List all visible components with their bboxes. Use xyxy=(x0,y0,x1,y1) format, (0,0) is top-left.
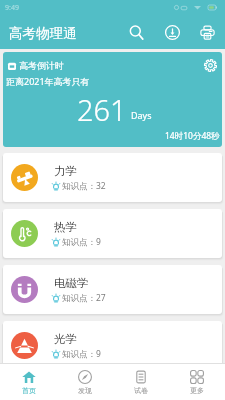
button[interactable]: 发现 xyxy=(57,364,113,400)
button[interactable]: Print xyxy=(193,18,222,47)
staticText: 力学 xyxy=(54,164,77,178)
staticText: 知识点：9 xyxy=(62,236,101,248)
staticText: 电磁学 xyxy=(54,276,89,290)
staticText: 知识点：27 xyxy=(62,292,106,304)
staticText: 发现 xyxy=(78,386,92,395)
button[interactable]: 热学 xyxy=(3,209,222,258)
button[interactable]: 光学 xyxy=(3,321,222,370)
button[interactable]: Search xyxy=(122,18,151,47)
button[interactable]: 电磁学 xyxy=(3,265,222,314)
staticText: 知识点：32 xyxy=(62,180,106,192)
button[interactable]: 首页 xyxy=(0,364,57,400)
staticText: 高考物理通 xyxy=(9,25,77,42)
staticText: 热学 xyxy=(54,220,77,234)
staticText: 首页 xyxy=(22,386,36,395)
button[interactable]: Settings xyxy=(201,56,219,74)
staticText: 9:49 xyxy=(5,3,19,13)
button[interactable]: 试卷 xyxy=(113,364,169,400)
staticText: 更多 xyxy=(190,386,204,395)
staticText: 距离2021年高考只有 xyxy=(6,75,90,87)
staticText: 高考倒计时 xyxy=(19,60,64,71)
button[interactable]: 力学 xyxy=(3,153,222,202)
button[interactable]: 更多 xyxy=(169,364,225,400)
button[interactable]: Download xyxy=(158,18,187,47)
staticText: 试卷 xyxy=(134,386,148,395)
button[interactable]: 高考倒计时 xyxy=(3,52,222,147)
staticText: 知识点：9 xyxy=(62,348,101,360)
staticText: 261 xyxy=(77,90,127,129)
staticText: 光学 xyxy=(54,332,77,346)
staticText: 14时10分48秒 xyxy=(165,130,220,142)
staticText: Days xyxy=(131,109,152,121)
